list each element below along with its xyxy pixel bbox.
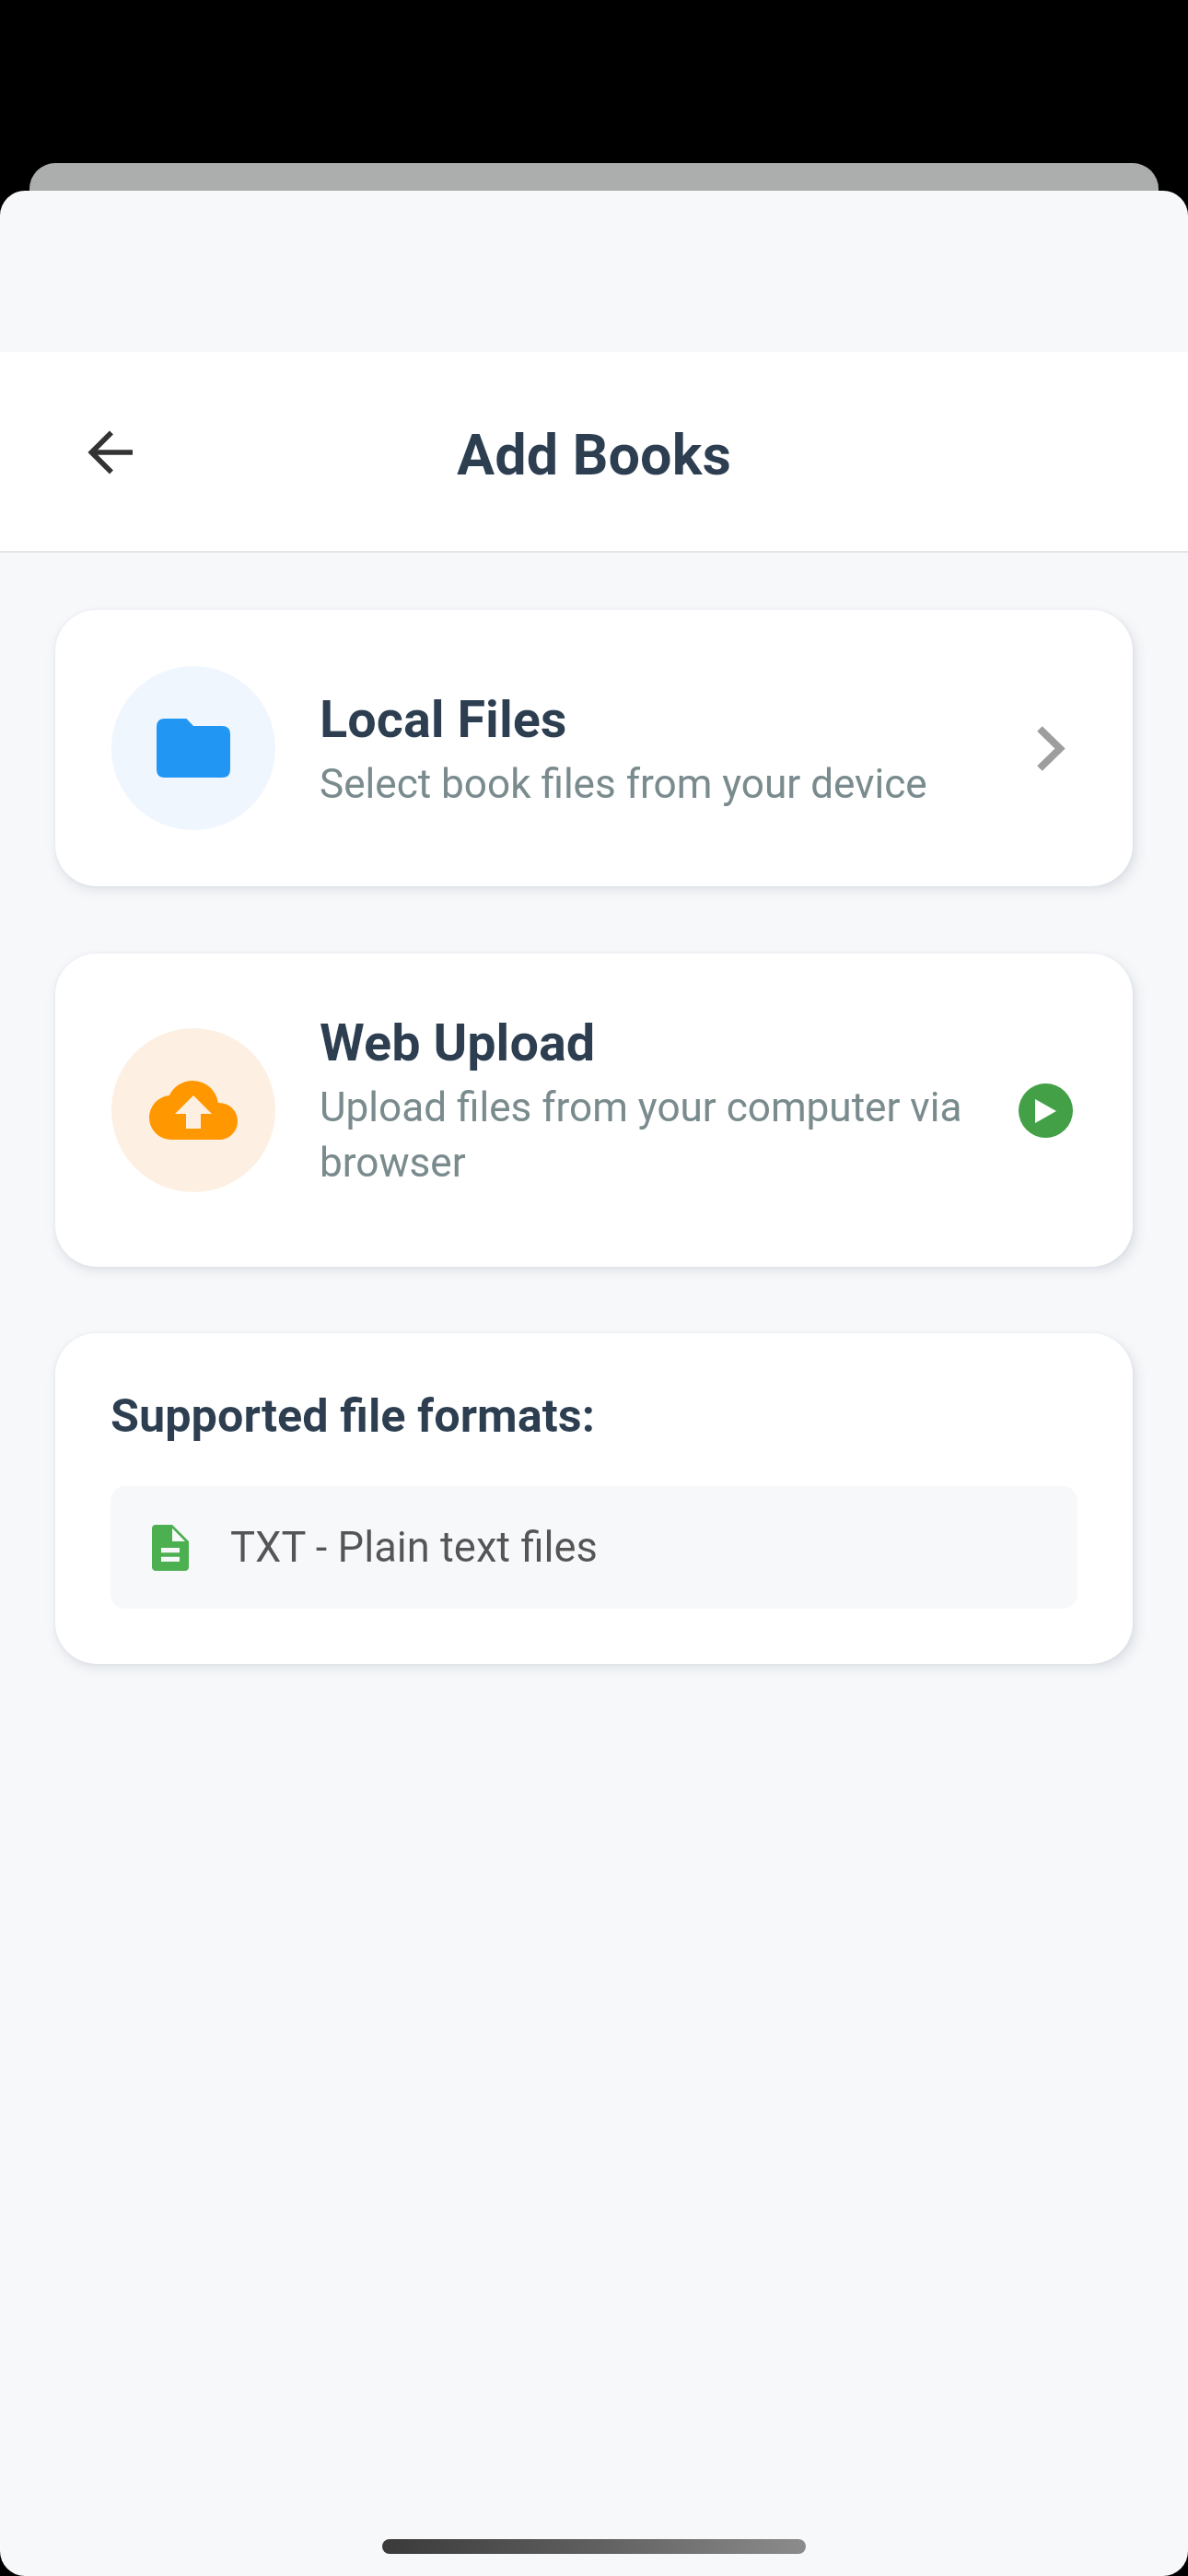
button[interactable]: Supported file formats: bbox=[55, 1333, 1133, 1664]
staticText: Select book files from your device bbox=[320, 760, 927, 808]
staticText: Local Files bbox=[320, 689, 567, 749]
staticText: TXT - Plain text files bbox=[230, 1523, 598, 1572]
staticText: Add Books bbox=[457, 422, 731, 488]
staticText: Supported file formats: bbox=[111, 1388, 595, 1443]
button[interactable]: Local Files bbox=[55, 610, 1133, 886]
button[interactable]: Start web upload bbox=[1019, 1083, 1073, 1138]
staticText: Web Upload bbox=[320, 1013, 596, 1072]
button[interactable]: Web Upload bbox=[55, 954, 1133, 1267]
button[interactable]: Back bbox=[66, 408, 155, 497]
button[interactable]: Open local files bbox=[1008, 707, 1091, 790]
staticText: Upload files from your computer via brow… bbox=[320, 1083, 969, 1186]
button[interactable]: TXT - Plain text files bbox=[111, 1486, 1077, 1609]
